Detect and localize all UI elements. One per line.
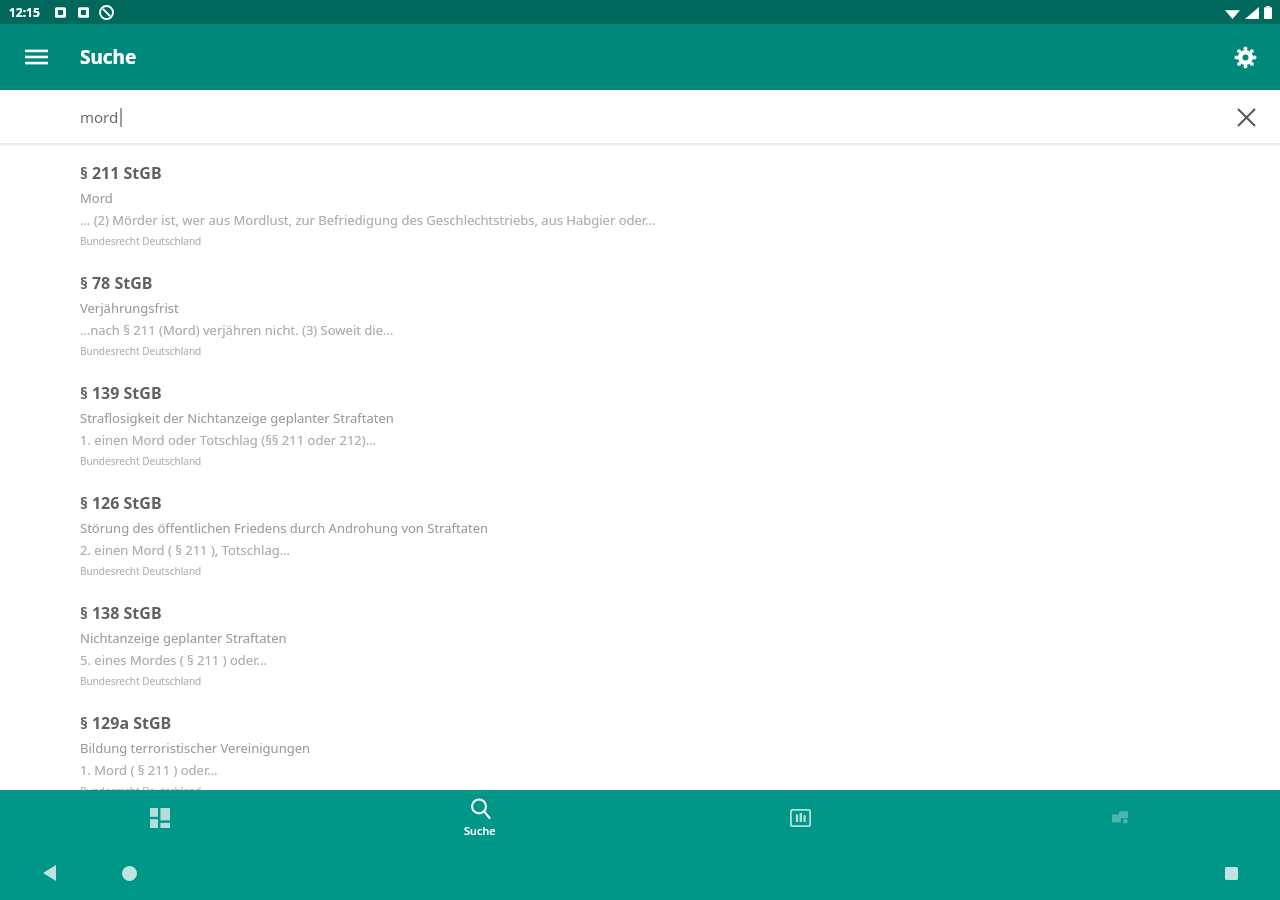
staticText: Bundesrecht Deutschland [80, 454, 202, 468]
staticText: 12:15 [9, 4, 40, 20]
staticText: § 126 StGB [80, 492, 162, 514]
staticText: … (2) Mörder ist, wer aus Mordlust, zur … [80, 211, 656, 229]
staticText: 2. einen Mord ( § 211 ), Totschlag… [80, 541, 290, 559]
staticText: Verjährungsfrist [80, 299, 179, 317]
staticText: § 129a StGB [80, 712, 172, 734]
staticText: Bundesrecht Deutschland [80, 234, 202, 248]
button[interactable]: Übersicht [0, 790, 320, 845]
button[interactable]: § 126 StGB [0, 477, 1280, 587]
button[interactable]: Extras [960, 790, 1280, 845]
staticText: § 139 StGB [80, 382, 162, 404]
staticText: 1. einen Mord oder Totschlag (§§ 211 ode… [80, 431, 376, 449]
button[interactable]: § 138 StGB [0, 587, 1280, 697]
button[interactable]: § 139 StGB [0, 367, 1280, 477]
staticText: …nach § 211 (Mord) verjähren nicht. (3) … [80, 321, 394, 339]
staticText: Straflosigkeit der Nichtanzeige geplante… [80, 409, 394, 427]
button[interactable]: Einstellungen [1222, 34, 1268, 80]
staticText: Bundesrecht Deutschland [80, 784, 202, 790]
staticText: Suche [464, 823, 496, 838]
button[interactable]: § 211 StGB [0, 147, 1280, 257]
button[interactable]: Letzte Apps [1212, 854, 1250, 892]
staticText: Mord [80, 189, 113, 207]
staticText: § 78 StGB [80, 272, 153, 294]
staticText: 5. eines Mordes ( § 211 ) oder… [80, 651, 267, 669]
staticText: Bundesrecht Deutschland [80, 344, 202, 358]
staticText: Störung des öffentlichen Friedens durch … [80, 519, 489, 537]
staticText: Suche [80, 44, 137, 70]
button[interactable]: Menü öffnen [14, 35, 58, 79]
button[interactable]: Startbildschirm [110, 854, 148, 892]
staticText: 1. Mord ( § 211 ) oder… [80, 761, 218, 779]
button[interactable]: Suche löschen [1224, 95, 1268, 139]
staticText: § 138 StGB [80, 602, 162, 624]
button[interactable]: Suche [320, 790, 640, 845]
staticText: Nichtanzeige geplanter Straftaten [80, 629, 287, 647]
staticText: § 211 StGB [80, 162, 162, 184]
button[interactable]: Bibliothek [640, 790, 960, 845]
button[interactable]: § 129a StGB [0, 697, 1280, 790]
staticText: Bundesrecht Deutschland [80, 564, 202, 578]
button[interactable]: Zurück [30, 854, 68, 892]
staticText: mord [80, 107, 119, 127]
button[interactable]: mord [0, 90, 1280, 143]
button[interactable]: § 78 StGB [0, 257, 1280, 367]
staticText: Bundesrecht Deutschland [80, 674, 202, 688]
staticText: Bildung terroristischer Vereinigungen [80, 739, 311, 757]
